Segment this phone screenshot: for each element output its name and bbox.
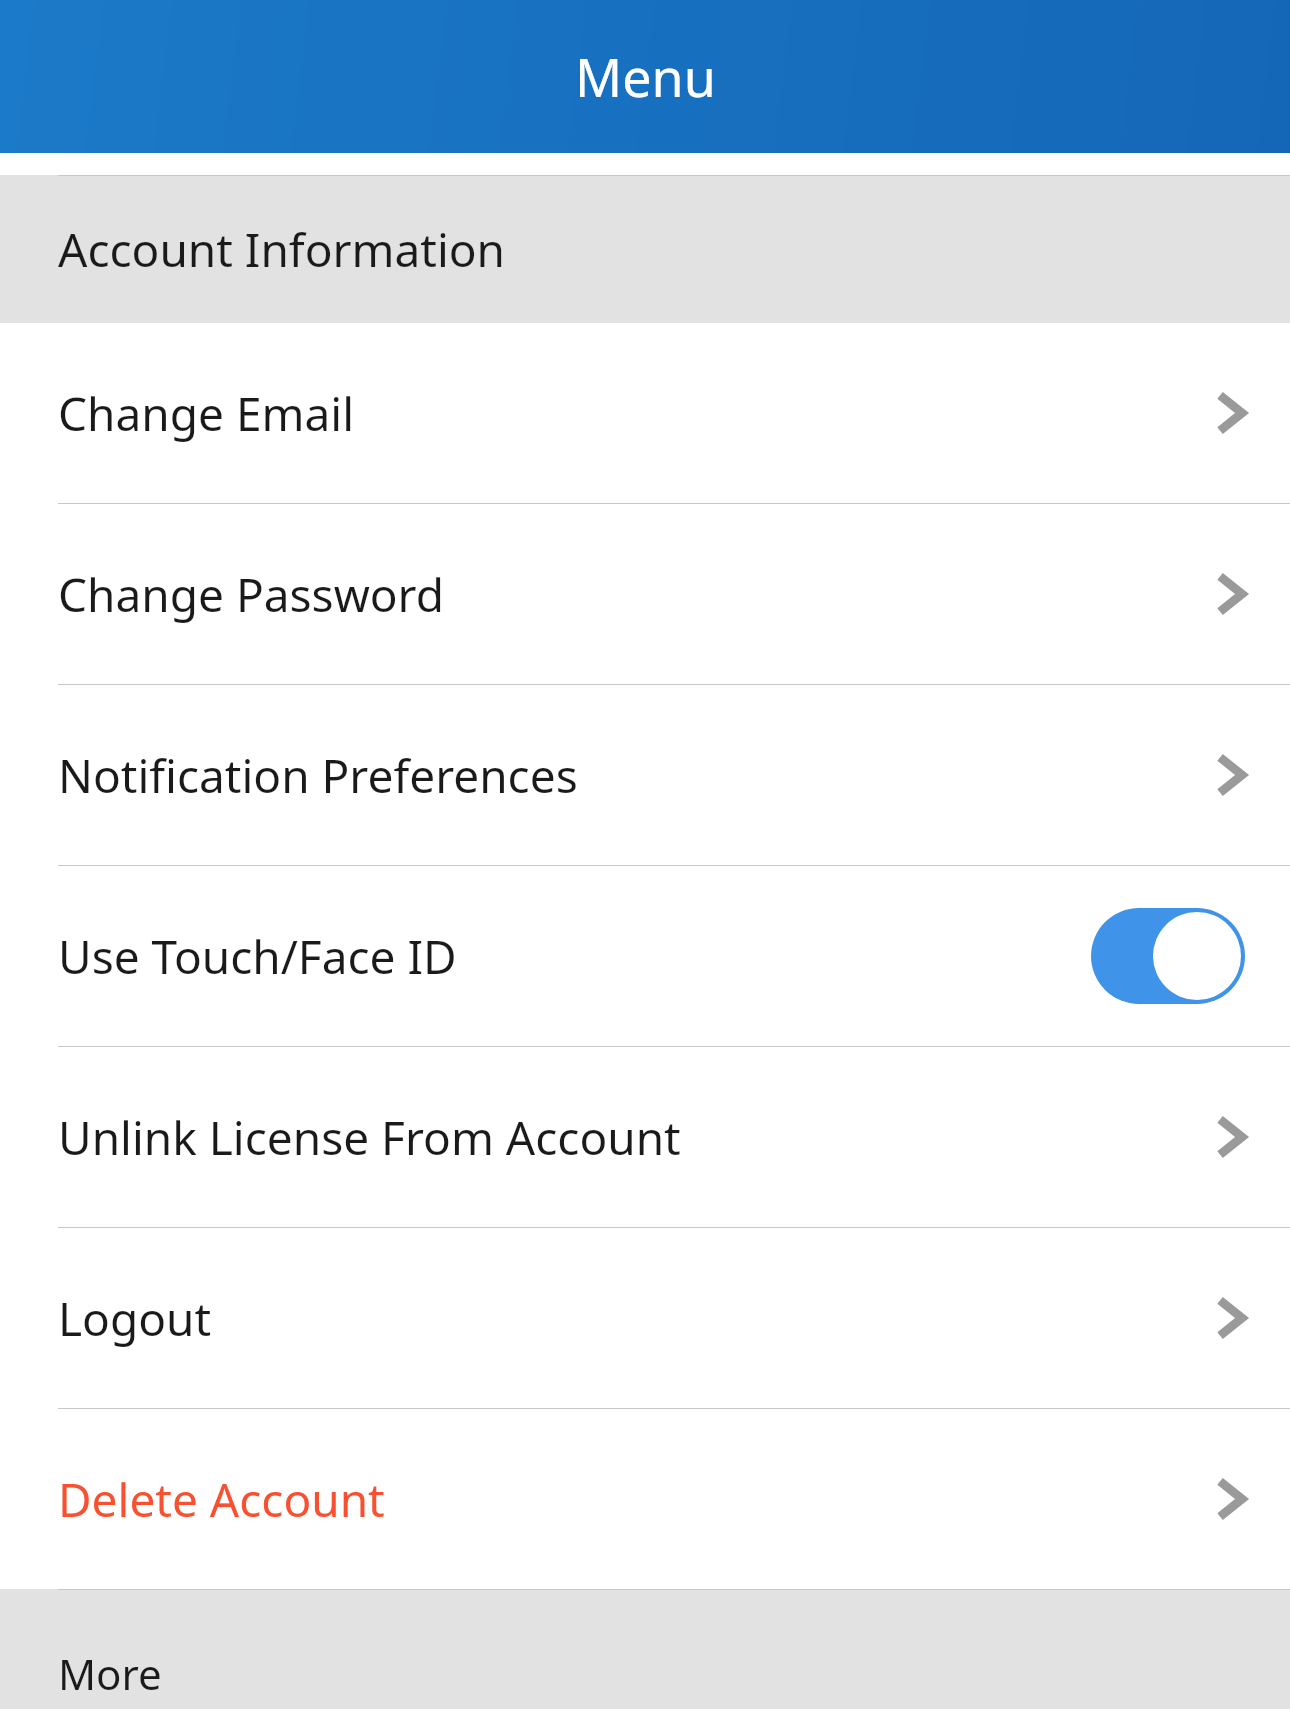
staticText: Unlink License From Account — [58, 1106, 1216, 1169]
staticText: Menu — [575, 41, 716, 112]
staticText: More — [58, 1645, 162, 1702]
staticText: Change Email — [58, 382, 1216, 445]
button[interactable]: Account Information — [0, 175, 1290, 323]
button[interactable]: Logout — [0, 1228, 1290, 1408]
staticText: Account Information — [58, 218, 506, 281]
button[interactable]: Change Email — [0, 323, 1290, 503]
button[interactable]: Delete Account — [0, 1409, 1290, 1589]
staticText: Use Touch/Face ID — [58, 925, 1091, 988]
button[interactable]: Use Touch or Face ID, on — [1091, 908, 1245, 1004]
button[interactable]: Notification Preferences — [0, 685, 1290, 865]
staticText: Logout — [58, 1287, 1216, 1350]
button[interactable]: Unlink License From Account — [0, 1047, 1290, 1227]
staticText: Notification Preferences — [58, 744, 1216, 807]
button[interactable]: Change Password — [0, 504, 1290, 684]
staticText: Delete Account — [58, 1468, 1216, 1531]
button[interactable]: Use Touch/Face ID — [0, 866, 1290, 1046]
staticText: Change Password — [58, 563, 1216, 626]
button[interactable]: More — [0, 1589, 1290, 1709]
